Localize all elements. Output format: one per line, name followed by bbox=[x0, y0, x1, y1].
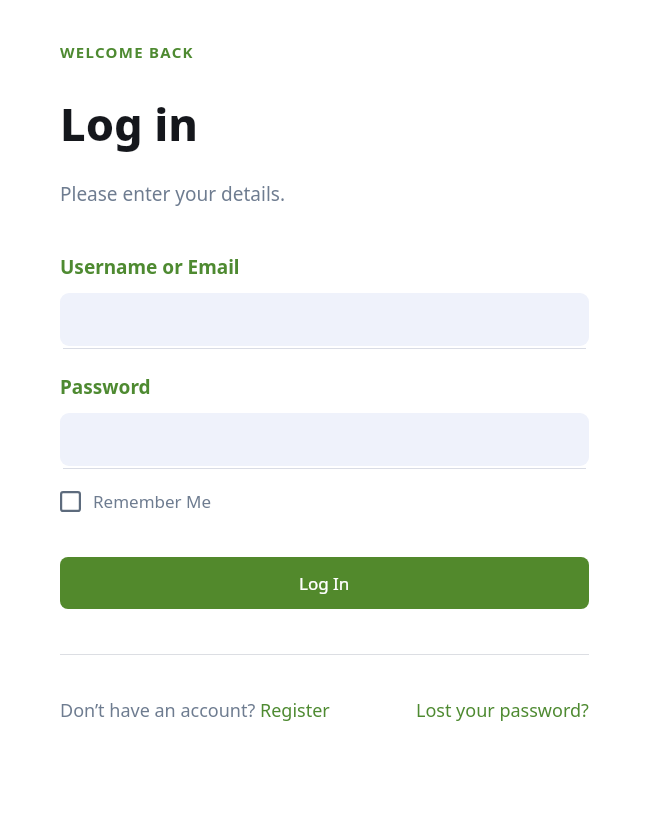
staticText: Register bbox=[260, 698, 330, 723]
staticText: Don’t have an account? bbox=[60, 698, 260, 723]
button[interactable]: Remember Me checkbox bbox=[60, 490, 212, 513]
staticText: Please enter your details. bbox=[60, 181, 285, 207]
button[interactable] bbox=[60, 293, 589, 349]
staticText: Username or Email bbox=[60, 254, 240, 280]
staticText: WELCOME BACK bbox=[60, 42, 194, 62]
staticText: Log In bbox=[299, 572, 350, 595]
button[interactable]: Log In bbox=[60, 557, 589, 609]
staticText: Password bbox=[60, 374, 151, 400]
button[interactable]: Lost your password? bbox=[416, 698, 589, 723]
other: Remember Me checkbox bbox=[60, 491, 81, 512]
staticText: Log in bbox=[60, 93, 199, 154]
staticText: Remember Me bbox=[93, 490, 212, 513]
button[interactable] bbox=[60, 413, 589, 469]
button[interactable]: Don’t have an account? bbox=[60, 698, 330, 723]
